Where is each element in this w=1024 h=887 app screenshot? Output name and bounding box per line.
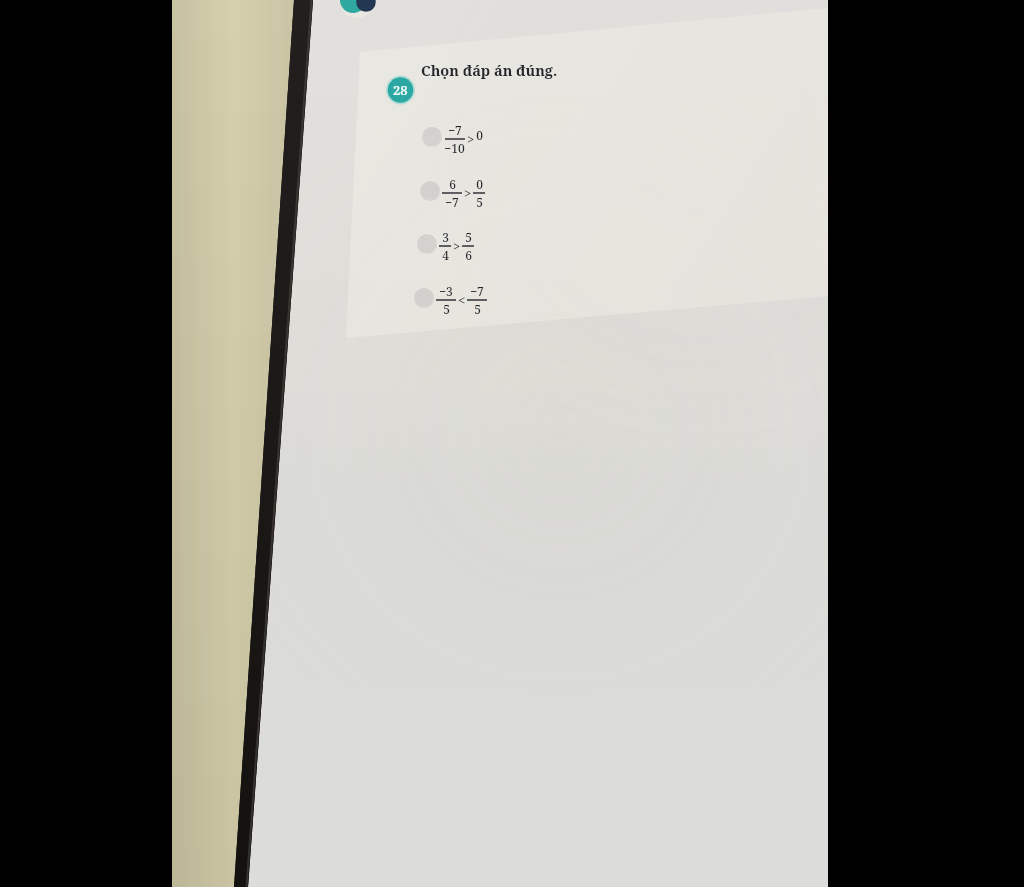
staticText: > <box>467 130 475 148</box>
button[interactable]: 3 <box>415 222 525 266</box>
staticText: < <box>458 291 466 309</box>
staticText: −7 <box>445 194 459 210</box>
staticText: > <box>464 184 472 202</box>
staticText: 28 <box>393 81 408 99</box>
staticText: −7 <box>470 283 484 299</box>
staticText: 0 <box>476 176 483 192</box>
staticText: 6 <box>449 176 456 192</box>
staticText: 5 <box>476 194 483 210</box>
staticText: > <box>453 237 461 255</box>
staticText: −7 <box>448 122 462 138</box>
staticText: 6 <box>465 247 472 263</box>
staticText: 5 <box>465 229 472 245</box>
button[interactable]: −7 <box>420 115 530 159</box>
staticText: Chọn đáp án đúng. <box>421 60 558 80</box>
staticText: 0 <box>476 127 483 143</box>
button[interactable]: 6 <box>418 169 528 213</box>
staticText: −10 <box>444 140 465 156</box>
staticText: −3 <box>439 283 453 299</box>
staticText: 4 <box>442 247 449 263</box>
button[interactable]: Question 28 <box>386 75 415 105</box>
button[interactable]: −3 <box>412 276 522 320</box>
staticText: 5 <box>474 301 481 317</box>
staticText: 5 <box>443 301 450 317</box>
staticText: 3 <box>442 229 449 245</box>
